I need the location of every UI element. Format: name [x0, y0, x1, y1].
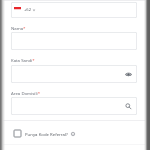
button[interactable]: +62 [11, 2, 137, 18]
staticText: +62 [24, 7, 32, 13]
button[interactable]: Punya Kode Referral? [14, 130, 75, 137]
other: Search [125, 103, 132, 110]
staticText: Punya Kode Referral? [25, 131, 68, 137]
button[interactable]: Search [11, 97, 137, 115]
staticText: Area Domisili* [11, 90, 40, 96]
button[interactable] [11, 32, 137, 50]
other: Info [71, 132, 75, 136]
staticText: Nama* [11, 25, 26, 31]
staticText: Kata Sandi* [11, 57, 35, 63]
button[interactable]: Show password [11, 65, 137, 83]
other: Show password [125, 72, 132, 77]
